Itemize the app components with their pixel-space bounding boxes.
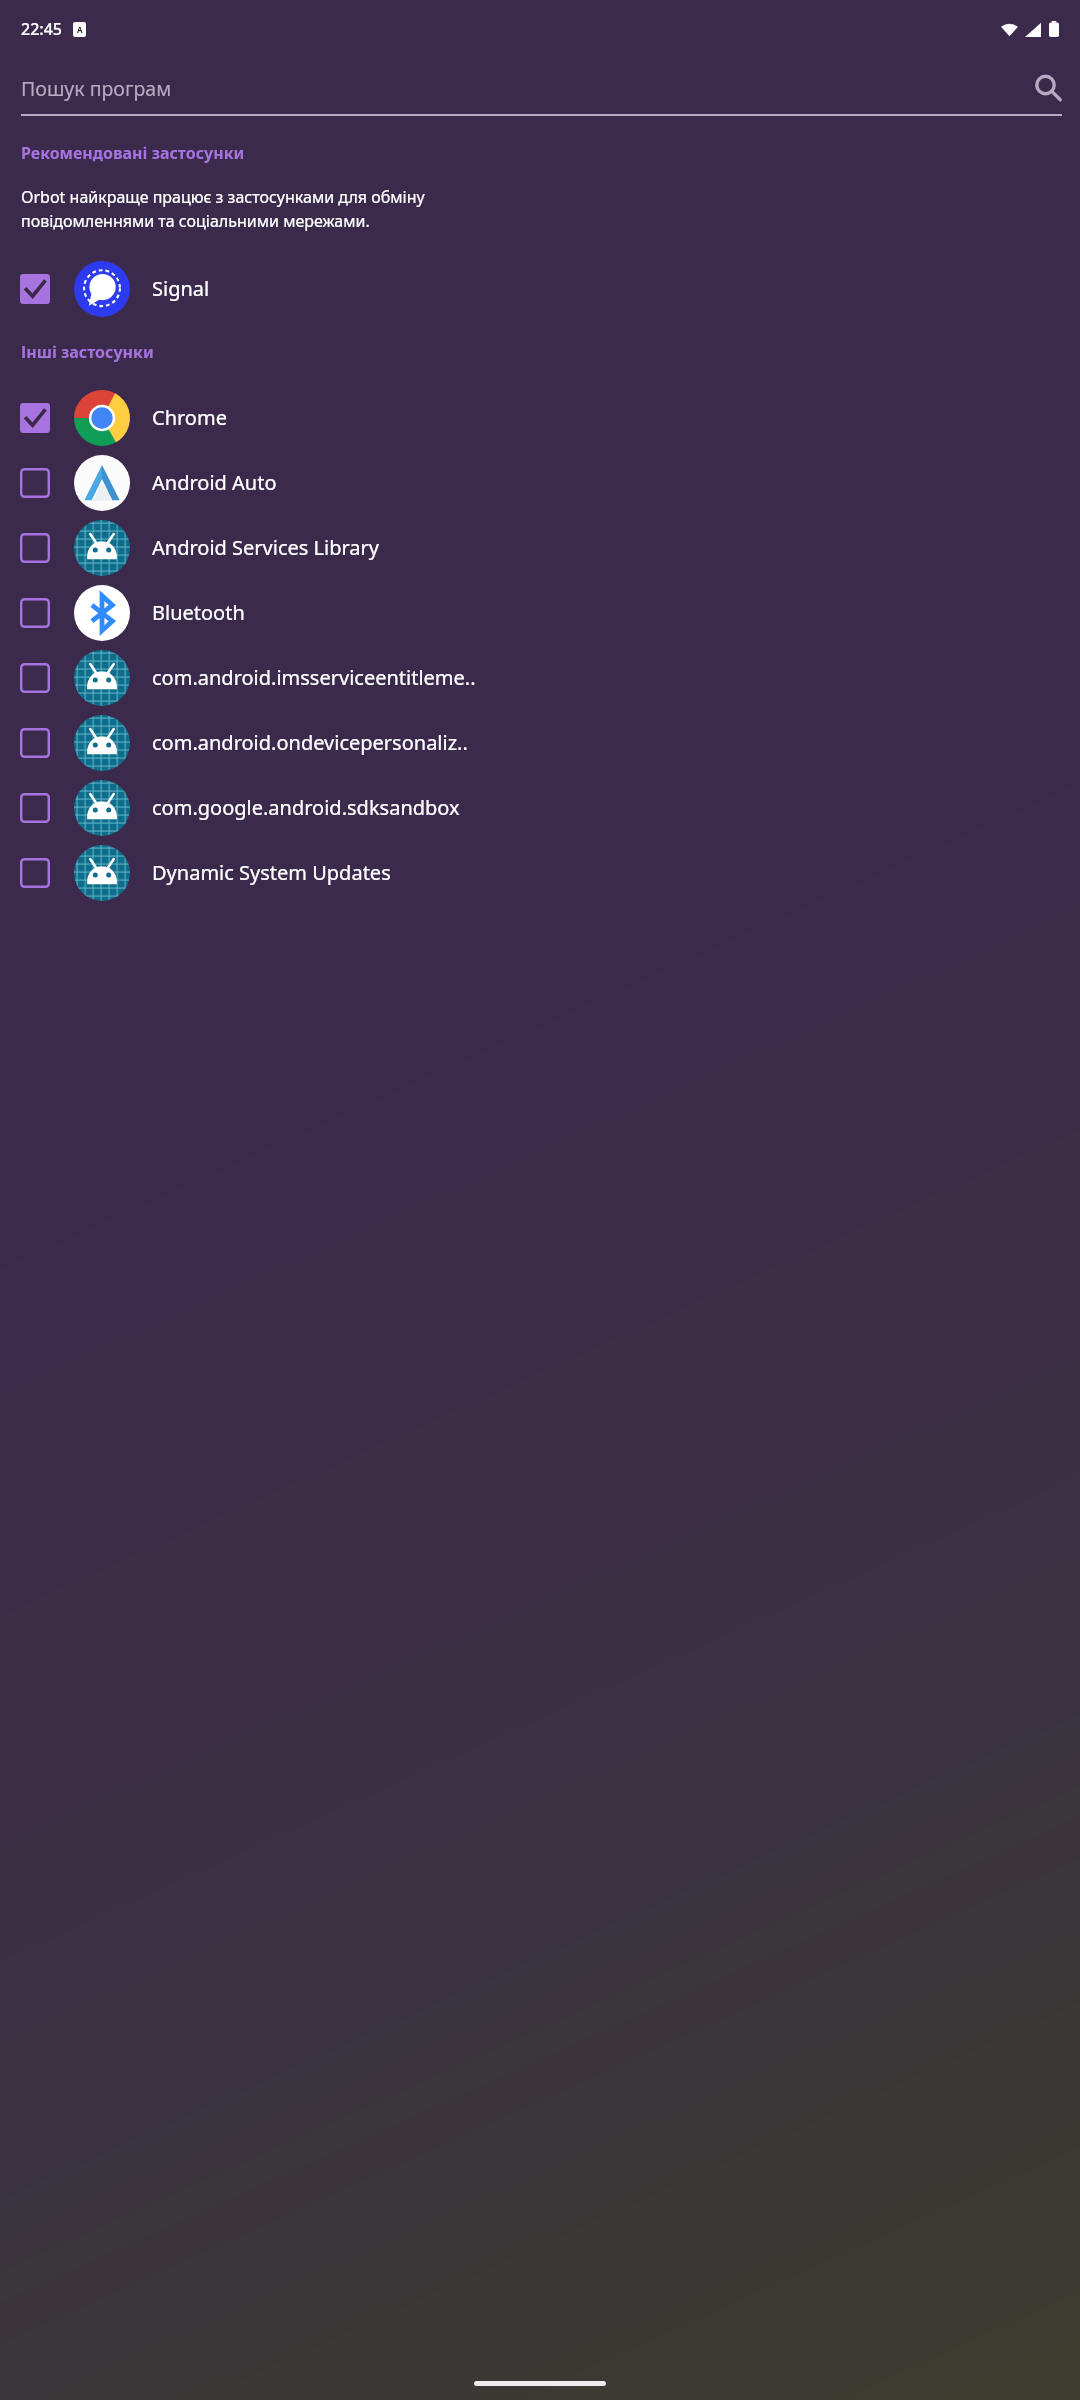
button[interactable]: Dynamic System Updates [0,840,1080,905]
staticText: Пошук програм [21,75,1032,102]
button[interactable]: Пошук програм [21,62,1062,116]
staticText: com.android.ondevicepersonaliz.. [152,729,1074,756]
staticText: com.android.imsserviceentitleme.. [152,664,1074,691]
button[interactable]: Bluetooth [0,580,1080,645]
staticText: Інші застосунки [21,341,154,363]
staticText: Рекомендовані застосунки [21,142,245,164]
staticText: Signal [152,275,1074,302]
button[interactable]: Android Auto [0,450,1080,515]
staticText: Bluetooth [152,599,1074,626]
other: Search [1032,73,1062,103]
staticText: 22:45 [21,18,62,40]
button[interactable]: com.google.android.sdksandbox [0,775,1080,840]
staticText: Dynamic System Updates [152,859,1074,886]
button[interactable]: Chrome [0,385,1080,450]
button[interactable]: com.android.ondevicepersonaliz.. [0,710,1080,775]
staticText: Orbot найкраще працює з застосунками для… [21,186,425,232]
staticText: Chrome [152,404,1074,431]
staticText: Android Services Library [152,534,1074,561]
staticText: Android Auto [152,469,1074,496]
staticText: com.google.android.sdksandbox [152,794,1074,821]
staticText: A [77,24,83,35]
button[interactable]: Android Services Library [0,515,1080,580]
button[interactable]: Signal [0,256,1080,321]
button[interactable]: com.android.imsserviceentitleme.. [0,645,1080,710]
